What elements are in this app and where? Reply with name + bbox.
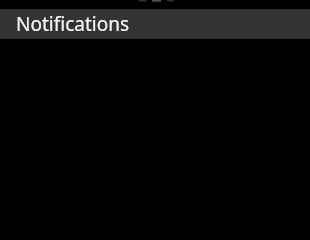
staticText: Notifications bbox=[16, 11, 130, 37]
button[interactable]: Notifications bbox=[0, 9, 310, 39]
other: System status bar bbox=[0, 0, 310, 9]
